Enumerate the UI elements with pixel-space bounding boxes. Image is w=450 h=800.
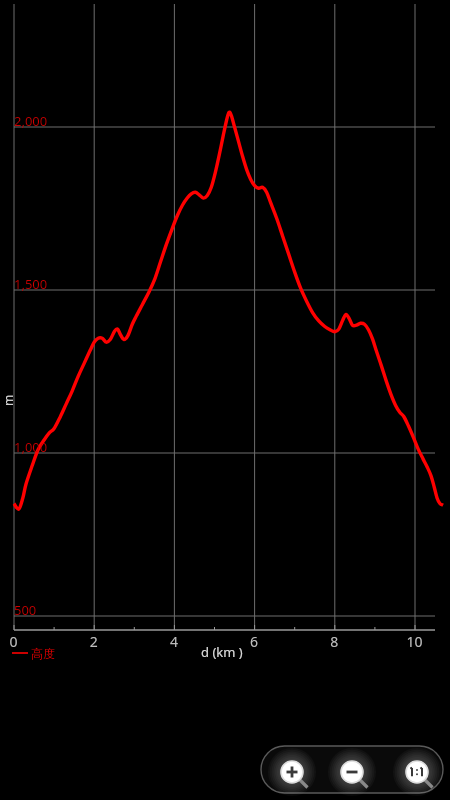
button[interactable]: Reset zoom	[397, 752, 437, 792]
button[interactable]: Zoom in	[272, 752, 312, 792]
button[interactable]: Zoom out	[332, 752, 372, 792]
